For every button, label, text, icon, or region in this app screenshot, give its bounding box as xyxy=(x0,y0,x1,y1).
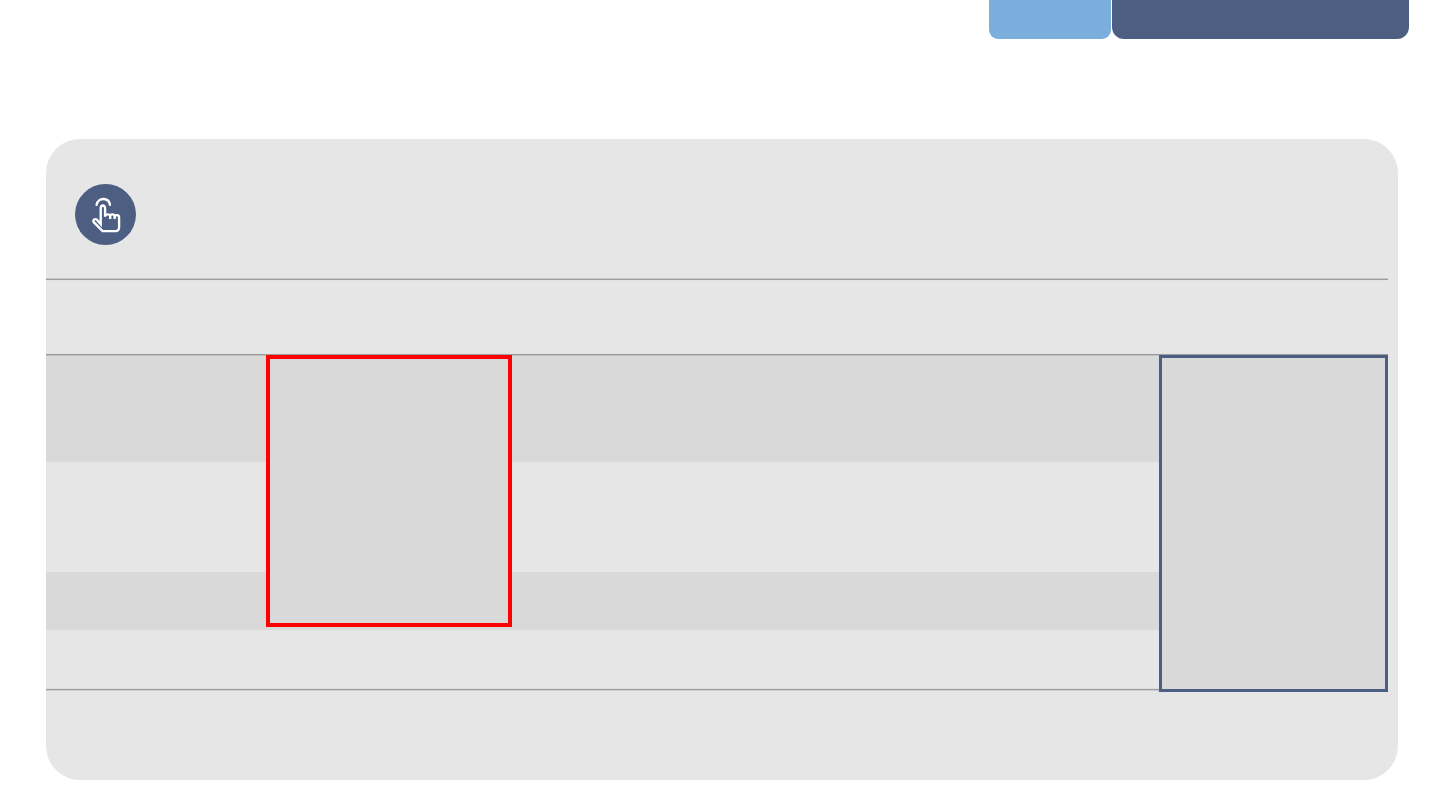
button[interactable]: Tap action xyxy=(75,184,136,245)
button[interactable]: Selected region xyxy=(266,355,512,627)
button[interactable]: Current tab xyxy=(1112,0,1409,39)
button[interactable]: Focused column xyxy=(1159,355,1388,692)
button[interactable]: Previous tab xyxy=(989,0,1111,39)
